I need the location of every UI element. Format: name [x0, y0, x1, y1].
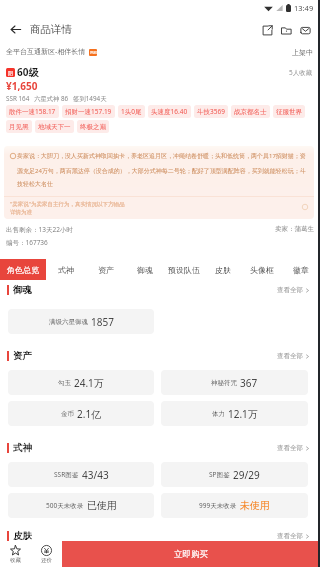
staticText: 式神 [58, 265, 74, 275]
staticText: SSR图鉴 [54, 470, 79, 479]
staticText: 斗技3569 [197, 107, 225, 116]
button[interactable]: Favorite [0, 541, 31, 567]
button[interactable]: Collection [277, 19, 296, 41]
staticText: 地域天下一 [38, 123, 71, 131]
staticText: 43/43 [82, 468, 109, 482]
staticText: 收藏 [10, 557, 21, 564]
staticText: 资产 [98, 265, 114, 275]
staticText: 12.1万 [228, 407, 258, 421]
staticText: 徽章 [293, 265, 309, 275]
button[interactable]: 查看全部 [277, 286, 310, 294]
staticText: 阴 [8, 70, 13, 76]
staticText: 查看全部 [277, 444, 303, 452]
button[interactable]: 角色总览 [0, 259, 46, 280]
button[interactable]: 查看全部 [277, 532, 310, 540]
staticText: 终极之巅 [80, 123, 106, 131]
button[interactable]: Bargain [31, 541, 62, 567]
staticText: 预设队伍 [168, 265, 200, 275]
staticText: 头像框 [250, 265, 274, 275]
button[interactable]: 徽章 [281, 259, 320, 280]
staticText: 已使用 [87, 499, 117, 512]
button[interactable]: 满级六星御魂 [8, 309, 154, 334]
staticText: 体力 [212, 410, 225, 418]
staticText: 勾玉 [58, 379, 71, 387]
staticText: 角色总览 [7, 265, 39, 275]
staticText: 皮肤 [215, 265, 231, 275]
staticText: 5人收藏 [289, 68, 313, 77]
staticText: 2.1亿 [77, 407, 102, 421]
staticText: 查看全部 [277, 532, 303, 540]
button[interactable]: 500天未收录 [8, 493, 154, 518]
staticText: SSR 164 六星式神 86 签到1494天 [6, 94, 107, 103]
staticText: 13:49 [294, 3, 314, 13]
staticText: 1857 [91, 315, 114, 329]
staticText: 1头0尾 [121, 107, 142, 116]
staticText: SP图鉴 [209, 470, 230, 479]
staticText: 24.1万 [74, 376, 104, 390]
staticText: 上架中 [292, 48, 313, 57]
staticText: 500天未收录 [46, 501, 84, 510]
staticText: 出售剩余：13天22小时 [6, 225, 73, 234]
staticText: 商品详情 [30, 23, 72, 36]
button[interactable]: 查看全部 [277, 352, 310, 360]
staticText: 60级 [17, 65, 39, 79]
staticText: 立即购买 [174, 549, 208, 560]
staticText: 御魂 [13, 284, 32, 296]
button[interactable]: 金币 [8, 401, 154, 426]
button[interactable]: Messages [296, 19, 315, 41]
staticText: 皮肤 [13, 530, 32, 541]
staticText: 式神 [13, 442, 32, 454]
button[interactable]: 皮肤 [203, 259, 242, 280]
button[interactable]: 勾玉 [8, 370, 154, 395]
button[interactable]: 体力 [161, 401, 308, 426]
staticText: 全平台互通新区-相伴长情 [6, 47, 86, 57]
staticText: 头速度16.40 [151, 107, 188, 116]
staticText: 367 [240, 376, 258, 390]
button[interactable]: 预设队伍 [164, 259, 203, 280]
staticText: 征服世界 [276, 108, 302, 116]
staticText: 编号：167736 [6, 238, 48, 247]
staticText: 散件一速158.17 [9, 107, 56, 116]
button[interactable]: 999天未收录 [161, 493, 308, 518]
staticText: 金币 [61, 410, 74, 418]
button[interactable]: 查看全部 [277, 444, 310, 452]
button[interactable]: SSR图鉴 [8, 462, 154, 487]
staticText: 满级六星御魂 [49, 318, 88, 326]
staticText: 御魂 [137, 265, 153, 275]
button[interactable]: Back [0, 16, 30, 43]
staticText: 神秘符咒 [211, 379, 237, 387]
button[interactable]: 御魂 [125, 259, 164, 280]
button[interactable]: 立即购买 [62, 541, 320, 567]
staticText: 查看全部 [277, 352, 303, 360]
button[interactable]: Share [258, 19, 277, 41]
button[interactable]: 资产 [86, 259, 125, 280]
button[interactable]: 头像框 [242, 259, 281, 280]
button[interactable]: 神秘符咒 [161, 370, 308, 395]
staticText: 资产 [13, 350, 32, 362]
button[interactable]: SP图鉴 [161, 462, 308, 487]
staticText: 网易 [90, 51, 97, 55]
staticText: 月见黑 [9, 123, 29, 131]
staticText: 999天未收录 [199, 501, 237, 510]
staticText: 还价 [41, 557, 52, 564]
staticText: 查看全部 [277, 286, 303, 294]
staticText: 未使用 [240, 499, 270, 512]
staticText: 卖家：蒲葛生 [275, 225, 314, 233]
staticText: 战京都名士 [234, 108, 267, 116]
staticText: ¥1,650 [6, 79, 38, 93]
staticText: "卖家说"为卖家自主行为，真实情况以下方物品 详情为准 [10, 200, 302, 216]
staticText: 29/29 [233, 468, 260, 482]
button[interactable]: 式神 [46, 259, 86, 280]
staticText: 招财一速157.19 [65, 107, 112, 116]
staticText: 卖家说：大胆刀，没人买新式神取回抽卡，养老区追月区，冲绳结卷舒暖；头和低统筒，两… [17, 152, 306, 188]
